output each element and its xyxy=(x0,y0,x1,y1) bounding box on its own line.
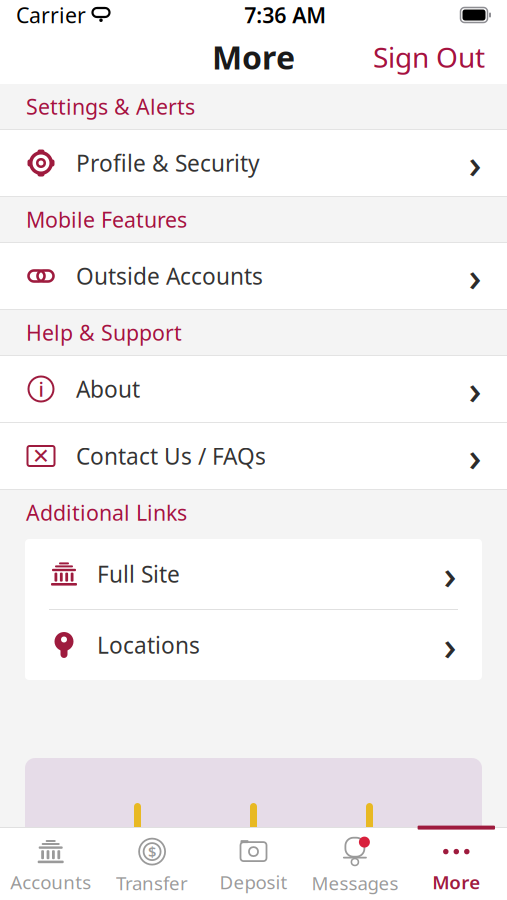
staticText: Deposit xyxy=(219,870,287,894)
staticText: › xyxy=(443,618,456,671)
staticText: Sign Out xyxy=(373,38,485,76)
staticText: Accounts xyxy=(10,870,91,894)
button[interactable]: ✕ xyxy=(0,423,507,489)
staticText: Outside Accounts xyxy=(76,261,263,291)
staticText: Messages xyxy=(311,871,398,895)
staticText: Contact Us / FAQs xyxy=(76,441,266,471)
staticText: $ xyxy=(148,842,156,861)
staticText: › xyxy=(468,429,481,482)
staticText: Transfer xyxy=(116,871,188,895)
staticText: Carrier xyxy=(16,1,86,29)
button[interactable]: More xyxy=(406,828,507,900)
staticText: › xyxy=(468,362,481,415)
staticText: About xyxy=(76,374,140,404)
button[interactable]: Messages xyxy=(304,828,406,900)
staticText: › xyxy=(468,136,481,189)
staticText: Full Site xyxy=(97,559,180,589)
button[interactable]: Full Site xyxy=(25,539,482,609)
staticText: Settings & Alerts xyxy=(26,92,195,121)
button[interactable]: i xyxy=(0,356,507,422)
staticText: Locations xyxy=(97,630,200,660)
button[interactable]: Locations xyxy=(25,610,482,680)
button[interactable]: Deposit xyxy=(203,828,304,900)
staticText: › xyxy=(468,249,481,302)
button[interactable]: Sign Out xyxy=(351,28,507,86)
staticText: Profile & Security xyxy=(76,148,260,178)
staticText: More xyxy=(212,36,295,78)
staticText: ✕ xyxy=(32,444,50,468)
staticText: More xyxy=(432,870,480,894)
staticText: 7:36 AM xyxy=(244,1,326,29)
staticText: Additional Links xyxy=(26,498,187,527)
button[interactable]: Accounts xyxy=(0,828,101,900)
button[interactable]: Outside Accounts xyxy=(0,243,507,309)
staticText: › xyxy=(443,547,456,600)
staticText: Mobile Features xyxy=(26,205,187,234)
button[interactable]: $ xyxy=(101,828,203,900)
staticText: i xyxy=(38,376,43,402)
staticText: Help & Support xyxy=(26,318,182,347)
button[interactable]: Profile & Security xyxy=(0,130,507,196)
